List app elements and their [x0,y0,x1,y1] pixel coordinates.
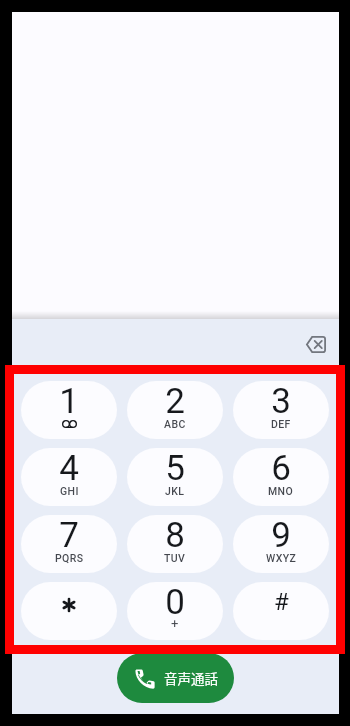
button[interactable]: 9 [233,515,329,573]
button[interactable]: 1 [21,381,117,439]
staticText: 2 [165,381,185,417]
button[interactable] [21,582,117,640]
staticText: 9 [271,515,291,551]
staticText: 6 [271,448,291,484]
staticText: ABC [164,418,186,430]
staticText: TUV [164,552,186,564]
button[interactable]: 4 [21,448,117,506]
button[interactable]: 2 [127,381,223,439]
staticText: 8 [165,515,185,551]
staticText: 1 [59,381,79,417]
staticText: JKL [165,485,185,497]
button[interactable]: 5 [127,448,223,506]
staticText: DEF [271,418,291,430]
staticText: GHI [60,485,79,497]
button[interactable]: 7 [21,515,117,573]
staticText: MNO [268,485,294,497]
staticText: 音声通話 [164,668,218,688]
button[interactable]: 音声通話 [117,653,234,703]
button[interactable]: # [233,582,329,640]
staticText: + [171,616,179,630]
button[interactable]: 8 [127,515,223,573]
staticText: WXYZ [266,552,297,564]
button[interactable]: 6 [233,448,329,506]
staticText: 4 [59,448,79,484]
button[interactable]: 0 [127,582,223,640]
staticText: 7 [59,515,79,551]
button[interactable]: Backspace [295,324,335,364]
staticText: # [274,588,289,616]
staticText: PQRS [55,552,84,564]
button[interactable]: 3 [233,381,329,439]
staticText: 5 [165,448,185,484]
staticText: 0 [165,582,185,618]
staticText: 3 [271,381,291,417]
